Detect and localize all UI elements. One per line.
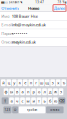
button[interactable]: ф — [4, 88, 8, 95]
staticText: E-mail — [1, 22, 12, 27]
staticText: э — [60, 89, 62, 94]
staticText: 13:47 — [35, 0, 44, 4]
staticText: р — [32, 89, 34, 94]
button[interactable]: щ — [45, 79, 50, 86]
button[interactable]: ю — [53, 97, 58, 104]
button[interactable]: я — [9, 97, 14, 104]
staticText: Описание — [1, 39, 18, 45]
staticText: •••••••• — [12, 31, 28, 36]
button[interactable]: Описание — [0, 38, 67, 46]
staticText: ы — [10, 89, 13, 94]
staticText: info@moykin.edi.uk — [12, 22, 46, 27]
button[interactable]: н — [28, 79, 33, 86]
staticText: щ — [45, 80, 49, 85]
button[interactable]: й — [1, 79, 6, 86]
button[interactable]: ц — [6, 79, 11, 86]
button[interactable]: ъ — [61, 79, 66, 86]
staticText: е — [24, 80, 26, 85]
staticText: ъ — [63, 80, 65, 85]
staticText: й — [2, 80, 4, 85]
staticText: Пароль — [1, 31, 14, 36]
staticText: к — [19, 80, 21, 85]
staticText: Далее — [54, 5, 65, 11]
button[interactable]: л — [42, 88, 47, 95]
staticText: ь — [43, 98, 45, 103]
button[interactable]: р — [31, 88, 36, 95]
button[interactable]: у — [12, 79, 17, 86]
button[interactable]: Готово — [46, 106, 64, 113]
staticText: пробел — [27, 108, 38, 112]
staticText: Билайн — [8, 0, 19, 4]
staticText: я — [10, 98, 12, 103]
staticText: м — [26, 98, 29, 103]
button[interactable]: Отменить — [0, 5, 19, 12]
button[interactable]: E-mail — [0, 21, 67, 29]
button[interactable]: п — [26, 88, 30, 95]
staticText: 108 Bauer Hse — [12, 13, 38, 19]
staticText: о — [38, 89, 40, 94]
button[interactable]: в — [15, 88, 19, 95]
staticText: ◥ — [20, 1, 22, 4]
button[interactable]: ь — [42, 97, 47, 104]
staticText: ч — [16, 98, 18, 103]
button[interactable]: х — [56, 79, 61, 86]
staticText: ⌫ — [59, 99, 65, 103]
button[interactable]: а — [20, 88, 25, 95]
staticText: ⇧ — [3, 99, 6, 103]
staticText: ж — [54, 89, 57, 94]
staticText: л — [43, 89, 45, 94]
staticText: moykin.edi.uk — [12, 39, 36, 45]
button[interactable]: т — [37, 97, 41, 104]
staticText: Новая — [28, 5, 39, 11]
staticText: в — [16, 89, 18, 94]
button[interactable]: ш — [39, 79, 44, 86]
staticText: б — [49, 98, 51, 103]
button[interactable]: ж — [53, 88, 58, 95]
staticText: ю — [54, 98, 57, 103]
button[interactable]: 123 — [3, 106, 11, 113]
staticText: ▮▮▮▫▫ — [1, 1, 8, 4]
button[interactable]: с — [20, 97, 25, 104]
staticText: г — [35, 80, 37, 85]
staticText: ц — [8, 80, 10, 85]
button[interactable]: ⇧ — [2, 97, 8, 104]
staticText: з — [52, 80, 54, 85]
staticText: ф — [5, 89, 8, 94]
button[interactable]: Пароль — [0, 29, 67, 37]
staticText: ш — [40, 80, 44, 85]
staticText: и — [32, 98, 34, 103]
button[interactable]: г — [34, 79, 39, 86]
staticText: х — [57, 80, 59, 85]
button[interactable]: ⌫ — [59, 97, 65, 104]
button[interactable]: д — [48, 88, 52, 95]
staticText: Готово — [50, 108, 60, 112]
button[interactable]: к — [17, 79, 22, 86]
staticText: Имя — [1, 13, 9, 19]
staticText: 123 — [4, 108, 10, 112]
button[interactable]: ы — [9, 88, 14, 95]
button[interactable]: е — [23, 79, 28, 86]
button[interactable]: ч — [15, 97, 19, 104]
staticText: у — [13, 80, 15, 85]
staticText: ▮ — [65, 1, 66, 4]
button[interactable]: б — [48, 97, 52, 104]
button[interactable]: м — [26, 97, 30, 104]
staticText: ☺ — [14, 108, 17, 111]
staticText: д — [49, 89, 51, 94]
staticText: т — [38, 98, 40, 103]
staticText: п — [27, 89, 29, 94]
staticText: н — [30, 80, 32, 85]
staticText: 78 % — [57, 0, 64, 4]
staticText: с — [21, 98, 23, 103]
button[interactable]: Имя — [0, 12, 67, 20]
button[interactable]: э — [59, 88, 63, 95]
button[interactable]: з — [50, 79, 55, 86]
button[interactable]: Далее — [53, 5, 67, 11]
button[interactable]: пробел — [19, 106, 45, 113]
staticText: Отменить — [1, 5, 19, 11]
button[interactable]: и — [31, 97, 36, 104]
button[interactable]: о — [37, 88, 41, 95]
button[interactable]: ☺ — [12, 106, 18, 113]
staticText: а — [21, 89, 23, 94]
